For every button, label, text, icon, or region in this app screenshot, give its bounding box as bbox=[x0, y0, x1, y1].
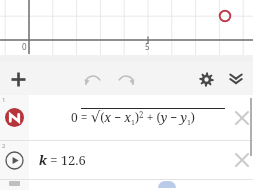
button[interactable]: Delete row 1 bbox=[231, 95, 253, 140]
staticText: 0 bbox=[22, 41, 27, 52]
button[interactable]: Settings bbox=[193, 66, 219, 92]
button[interactable]: Play animation bbox=[5, 151, 24, 170]
staticText: k = 12.6 bbox=[39, 151, 86, 169]
button[interactable]: Redo bbox=[113, 66, 139, 92]
staticText: 2 bbox=[2, 142, 6, 150]
button[interactable]: Toggle visibility bbox=[5, 108, 24, 127]
button[interactable]: Delete row 2 bbox=[231, 141, 253, 179]
button[interactable]: Collapse panel bbox=[223, 66, 249, 92]
staticText: 5 bbox=[145, 41, 150, 52]
staticText: 1 bbox=[2, 96, 6, 104]
button[interactable]: 1 bbox=[0, 95, 253, 140]
button[interactable]: 2 bbox=[0, 141, 253, 179]
button[interactable]: Add expression bbox=[4, 65, 32, 93]
button[interactable] bbox=[0, 180, 253, 190]
button[interactable]: Undo bbox=[79, 66, 105, 92]
staticText: 0 = √(x − x1)2 + (y − y1) bbox=[71, 108, 195, 127]
